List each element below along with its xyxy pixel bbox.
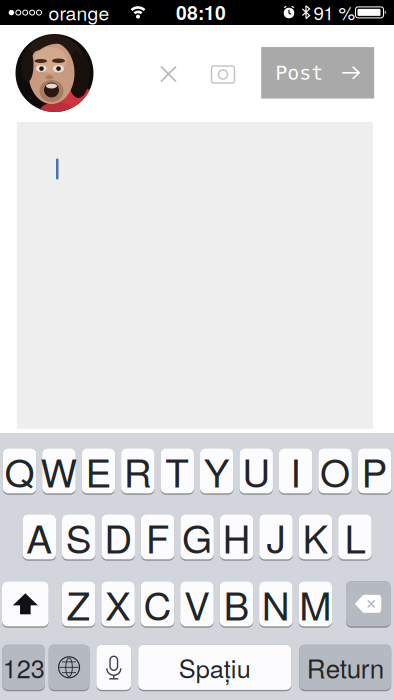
staticText: T <box>165 443 189 498</box>
staticText: Z <box>67 576 91 631</box>
staticText: L <box>344 509 365 564</box>
staticText: P <box>362 443 388 498</box>
staticText: D <box>104 509 132 564</box>
staticText: N <box>262 576 290 631</box>
staticText: G <box>182 509 212 564</box>
button[interactable]: U <box>239 448 273 495</box>
staticText: Post <box>275 61 323 84</box>
button[interactable]: S <box>62 514 95 561</box>
button[interactable]: M <box>299 581 332 628</box>
button[interactable]: J <box>259 514 293 561</box>
button[interactable]: T <box>161 448 194 495</box>
staticText: Q <box>4 443 34 498</box>
button[interactable]: 123 <box>2 645 45 691</box>
staticText: 91 % <box>313 0 355 25</box>
button[interactable]: G <box>180 514 214 561</box>
button[interactable]: Dictate <box>96 645 131 691</box>
button[interactable]: C <box>141 581 174 628</box>
button[interactable]: A <box>22 514 56 561</box>
staticText: X <box>105 576 131 631</box>
button[interactable]: D <box>101 514 135 561</box>
staticText: H <box>223 509 251 564</box>
button[interactable]: Return <box>299 645 391 691</box>
button[interactable]: K <box>299 514 332 561</box>
staticText: F <box>146 509 170 564</box>
button[interactable]: H <box>220 514 253 561</box>
button[interactable]: V <box>180 581 214 628</box>
staticText: S <box>66 509 92 564</box>
button[interactable]: Shift <box>2 581 49 628</box>
staticText: I <box>290 443 301 498</box>
staticText: Y <box>204 443 230 498</box>
button[interactable]: Q <box>3 448 36 495</box>
staticText: A <box>26 509 52 564</box>
staticText: Return <box>307 649 384 686</box>
staticText: O <box>320 443 350 498</box>
staticText: R <box>124 443 152 498</box>
staticText: 123 <box>3 649 45 685</box>
button[interactable]: Add photo <box>203 58 242 91</box>
staticText: E <box>85 443 111 498</box>
staticText: Spațiu <box>179 649 251 685</box>
button[interactable]: O <box>318 448 352 495</box>
button[interactable]: X <box>101 581 135 628</box>
staticText: C <box>143 576 171 631</box>
button[interactable]: B <box>220 581 253 628</box>
button[interactable]: P <box>358 448 391 495</box>
button[interactable]: F <box>141 514 174 561</box>
staticText: W <box>40 443 77 498</box>
staticText: 08:10 <box>176 0 226 26</box>
button[interactable]: Z <box>62 581 95 628</box>
button[interactable]: Y <box>200 448 233 495</box>
staticText: V <box>184 576 210 631</box>
button[interactable]: E <box>82 448 115 495</box>
button[interactable]: L <box>338 514 372 561</box>
button[interactable]: Post <box>261 47 374 98</box>
button[interactable]: Profile <box>15 34 93 112</box>
button[interactable]: Delete <box>346 581 390 628</box>
button[interactable]: R <box>121 448 155 495</box>
staticText: M <box>299 576 331 631</box>
staticText: U <box>242 443 270 498</box>
staticText: B <box>223 576 249 631</box>
button[interactable]: I <box>279 448 312 495</box>
button[interactable]: W <box>42 448 76 495</box>
staticText: orange <box>48 0 109 26</box>
button[interactable]: Spațiu <box>138 645 291 691</box>
staticText: K <box>302 509 328 564</box>
button[interactable]: Next keyboard <box>49 645 89 691</box>
button[interactable]: Close <box>150 55 187 92</box>
staticText: J <box>266 509 285 564</box>
button[interactable]: N <box>259 581 293 628</box>
